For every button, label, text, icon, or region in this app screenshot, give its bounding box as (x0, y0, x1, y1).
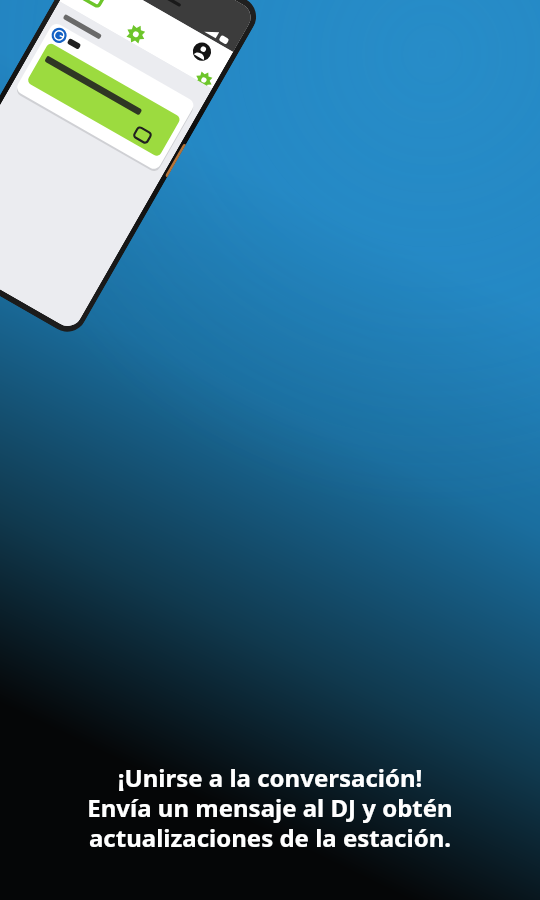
button[interactable]: Phone showing chat with the DJ (0, 0, 263, 339)
staticText: ¡Unirse a la conversación! Envía un mens… (10, 761, 530, 854)
